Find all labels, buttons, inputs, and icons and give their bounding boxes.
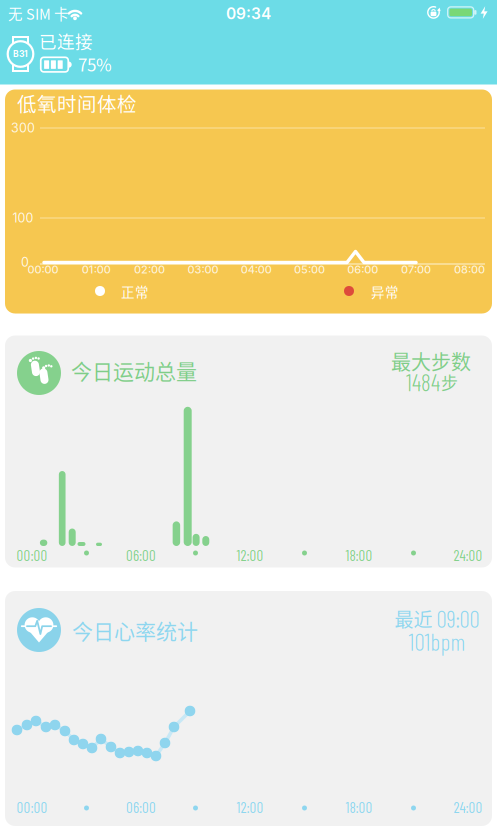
staticText: 最大步数 <box>391 346 471 375</box>
staticText: 06:00 <box>126 798 156 816</box>
staticText: 正常 <box>121 282 149 301</box>
staticText: 18:00 <box>345 798 372 816</box>
staticText: 24:00 <box>453 546 482 564</box>
button[interactable]: 今日运动总量 <box>5 335 492 567</box>
staticText: 05:00 <box>294 263 325 276</box>
button[interactable]: 低氧时间体检 <box>5 89 492 313</box>
staticText: 无 SIM 卡 <box>8 3 69 24</box>
button[interactable]: B31 <box>0 0 497 84</box>
staticText: 03:00 <box>187 263 218 276</box>
staticText: 06:00 <box>126 546 156 564</box>
staticText: 75% <box>78 52 112 76</box>
staticText: 101bpm <box>408 628 465 655</box>
staticText: 异常 <box>371 282 399 301</box>
staticText: 24:00 <box>453 798 482 816</box>
staticText: 09:00 <box>436 605 479 632</box>
staticText: 06:00 <box>347 263 378 276</box>
staticText: 300 <box>11 120 35 135</box>
staticText: 00:00 <box>16 546 47 564</box>
staticText: 100 <box>12 210 33 225</box>
staticText: 12:00 <box>236 798 263 816</box>
staticText: 04:00 <box>241 263 272 276</box>
staticText: 07:00 <box>401 263 431 276</box>
staticText: 00:00 <box>16 798 47 816</box>
staticText: 今日运动总量 <box>71 355 197 385</box>
staticText: 09:34 <box>226 4 271 23</box>
staticText: 18:00 <box>345 546 372 564</box>
staticText: 0 <box>21 255 29 270</box>
staticText: 今日心率统计 <box>72 615 198 645</box>
staticText: 步 <box>441 370 458 394</box>
staticText: 01:00 <box>82 263 111 276</box>
staticText: 1484 <box>406 368 440 396</box>
button[interactable]: 今日心率统计 <box>5 591 492 826</box>
staticText: B31 <box>13 49 28 59</box>
staticText: 最近 <box>394 605 432 632</box>
staticText: 低氧时间体检 <box>17 89 137 117</box>
staticText: 已连接 <box>39 28 93 53</box>
staticText: 08:00 <box>454 263 485 276</box>
staticText: 12:00 <box>236 546 263 564</box>
staticText: 00:00 <box>27 263 58 276</box>
staticText: 02:00 <box>134 263 165 276</box>
